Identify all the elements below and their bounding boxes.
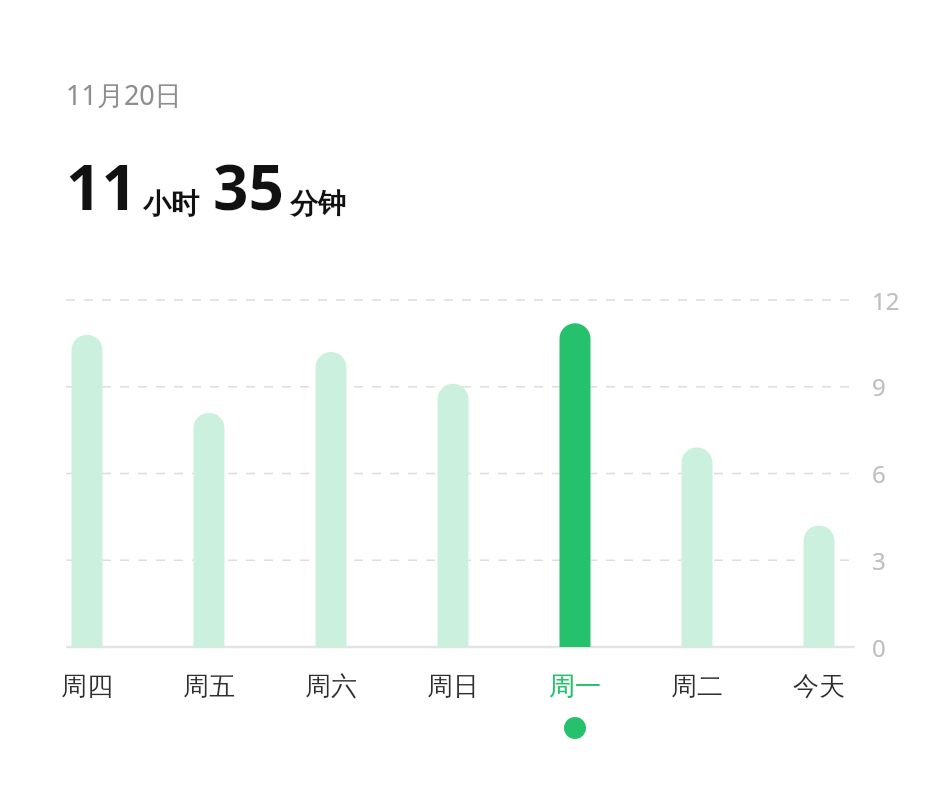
button[interactable]: 睡眠时长统计图表 bbox=[0, 0, 944, 798]
